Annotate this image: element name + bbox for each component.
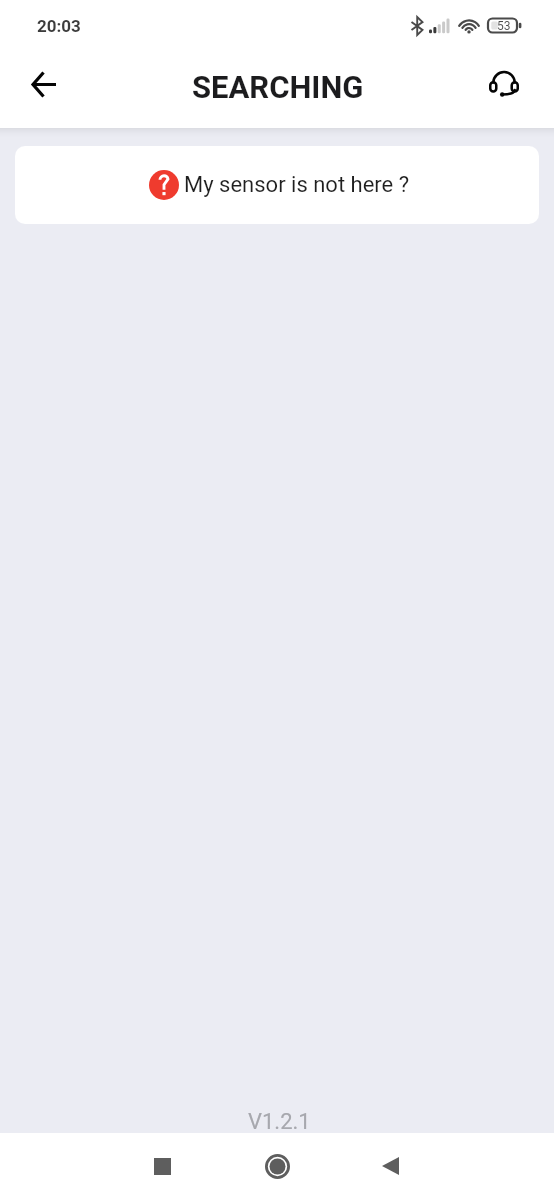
staticText: My sensor is not here ? <box>184 172 410 198</box>
staticText: 20:03 <box>37 16 81 36</box>
staticText: 53 <box>497 19 511 33</box>
staticText: SEARCHING <box>192 69 364 105</box>
button[interactable]: Back <box>15 56 71 112</box>
button[interactable]: Back <box>359 1135 421 1197</box>
button[interactable]: Customer support <box>476 56 532 112</box>
button[interactable]: Recent apps <box>131 1135 193 1197</box>
button[interactable]: Home <box>246 1135 308 1197</box>
button[interactable]: My sensor is not here ? <box>15 146 539 224</box>
staticText: V1.2.1 <box>248 1109 311 1135</box>
